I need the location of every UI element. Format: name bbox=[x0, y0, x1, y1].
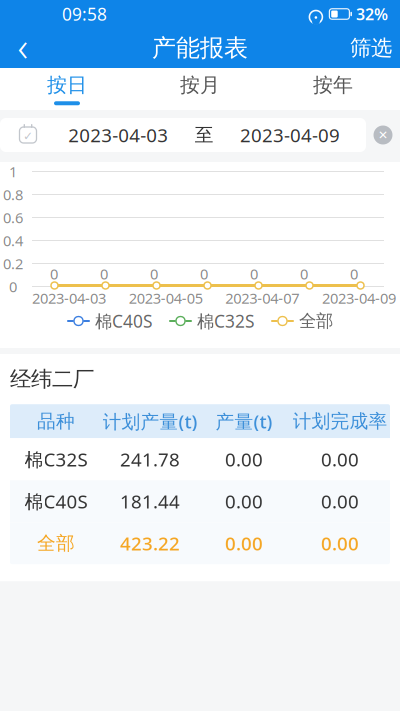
staticText: 2023-04-05 bbox=[129, 288, 203, 308]
staticText: 2023-04-09 bbox=[322, 288, 396, 308]
staticText: 0.6 bbox=[3, 208, 23, 227]
button[interactable]: 2023-04-09 bbox=[240, 123, 340, 147]
button[interactable]: 按月 bbox=[133, 68, 266, 110]
button[interactable]: 按日 bbox=[0, 68, 133, 110]
staticText: 棉C32S bbox=[197, 309, 255, 332]
staticText: 09:58 bbox=[62, 2, 107, 25]
staticText: 2023-04-09 bbox=[240, 123, 340, 147]
staticText: 0.2 bbox=[3, 254, 23, 273]
staticText: 2023-04-03 bbox=[68, 123, 168, 147]
staticText: 32% bbox=[356, 3, 388, 25]
button[interactable]: 2023-04-03 bbox=[68, 123, 168, 147]
staticText: 全部 bbox=[37, 532, 75, 555]
staticText: 241.78 bbox=[120, 447, 180, 472]
button[interactable]: Clear dates bbox=[368, 118, 398, 152]
staticText: 1 bbox=[9, 162, 17, 181]
staticText: 筛选 bbox=[350, 35, 392, 61]
staticText: 0.00 bbox=[321, 531, 359, 556]
staticText: 0 bbox=[100, 264, 108, 283]
staticText: 产量(t) bbox=[215, 409, 272, 434]
staticText: 423.22 bbox=[120, 531, 180, 556]
staticText: 产能报表 bbox=[152, 33, 248, 63]
staticText: 0.00 bbox=[321, 489, 359, 514]
staticText: 0.8 bbox=[3, 185, 23, 204]
button[interactable]: Pick date bbox=[14, 118, 42, 152]
staticText: ✓ bbox=[23, 129, 33, 143]
staticText: 0.00 bbox=[225, 447, 263, 472]
staticText: 181.44 bbox=[120, 489, 180, 514]
staticText: 按年 bbox=[313, 73, 353, 97]
staticText: 0.4 bbox=[3, 231, 23, 250]
staticText: 至 bbox=[195, 123, 214, 146]
staticText: 0 bbox=[50, 264, 58, 283]
button[interactable]: 筛选 bbox=[342, 28, 400, 68]
staticText: 全部 bbox=[299, 310, 333, 332]
staticText: 棉C40S bbox=[24, 489, 87, 514]
staticText: 棉C32S bbox=[24, 447, 87, 472]
button[interactable]: 按年 bbox=[266, 68, 399, 110]
staticText: 品种 bbox=[37, 410, 75, 433]
staticText: 0 bbox=[350, 264, 358, 283]
staticText: 0.00 bbox=[321, 447, 359, 472]
staticText: 0 bbox=[9, 277, 17, 296]
staticText: 计划产量(t) bbox=[102, 409, 197, 434]
staticText: 棉C40S bbox=[95, 309, 153, 332]
staticText: 0 bbox=[300, 264, 308, 283]
staticText: 2023-04-03 bbox=[32, 288, 106, 308]
staticText: 0.00 bbox=[225, 531, 263, 556]
staticText: 按日 bbox=[47, 73, 87, 97]
staticText: 按月 bbox=[180, 73, 220, 97]
button[interactable]: Back bbox=[0, 28, 46, 68]
staticText: 2023-04-07 bbox=[225, 288, 299, 308]
staticText: 0 bbox=[150, 264, 158, 283]
staticText: ‹ bbox=[17, 19, 28, 72]
staticText: ✕ bbox=[378, 128, 388, 142]
staticText: 0.00 bbox=[225, 489, 263, 514]
staticText: 计划完成率 bbox=[292, 410, 387, 433]
staticText: 0 bbox=[200, 264, 208, 283]
staticText: 经纬二厂 bbox=[10, 366, 94, 392]
staticText: 0 bbox=[250, 264, 258, 283]
